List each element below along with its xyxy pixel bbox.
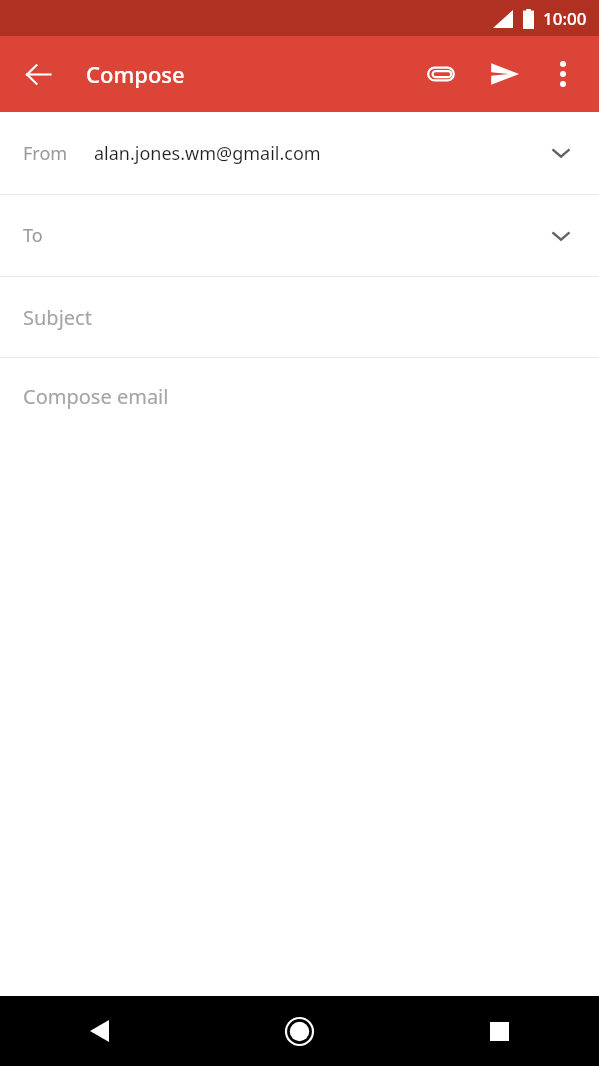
staticText: To: [23, 223, 43, 248]
staticText: From: [23, 141, 68, 166]
button[interactable]: Attach file: [415, 48, 467, 100]
button[interactable]: Subject: [0, 277, 599, 357]
button[interactable]: More options: [537, 48, 589, 100]
button[interactable]: Compose email: [0, 358, 599, 996]
staticText: 10:00: [543, 7, 587, 30]
button[interactable]: Recent apps: [399, 996, 599, 1066]
staticText: Compose: [86, 59, 185, 89]
staticText: alan.jones.wm@gmail.com: [94, 141, 321, 166]
button[interactable]: To: [0, 195, 599, 276]
button[interactable]: Home: [199, 996, 399, 1066]
button[interactable]: From: [0, 112, 599, 194]
button[interactable]: Back: [0, 996, 199, 1066]
staticText: Compose email: [23, 383, 169, 410]
button[interactable]: Send: [479, 48, 531, 100]
staticText: Subject: [23, 304, 92, 331]
button[interactable]: Back: [12, 48, 64, 100]
